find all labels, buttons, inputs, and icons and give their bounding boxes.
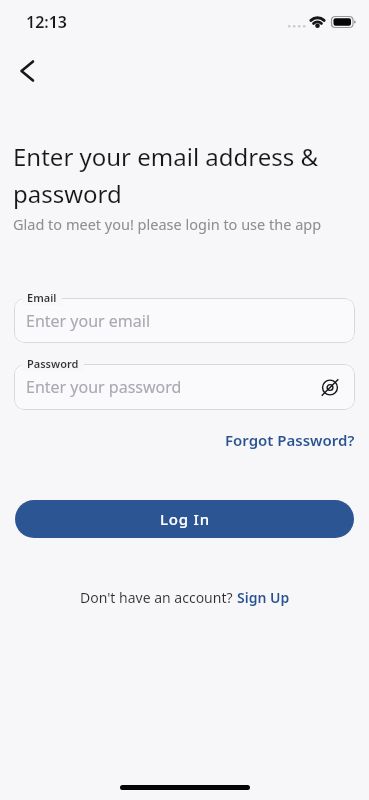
- staticText: Forgot Password?: [225, 430, 355, 450]
- staticText: Enter your password: [26, 376, 182, 398]
- staticText: Email: [27, 290, 57, 305]
- staticText: Enter your email: [26, 310, 151, 332]
- button[interactable]: Enter your email: [14, 298, 355, 343]
- staticText: Log In: [160, 509, 210, 529]
- staticText: Don't have an account?: [80, 588, 237, 607]
- staticText: Glad to meet you! please login to use th…: [13, 214, 322, 234]
- staticText: Enter your email address & password: [13, 140, 319, 210]
- button[interactable]: Forgot Password?: [225, 430, 355, 450]
- button[interactable]: Log In: [15, 500, 354, 538]
- staticText: 12:13: [26, 11, 68, 33]
- button[interactable]: [8, 52, 48, 92]
- button[interactable]: Enter your password: [14, 364, 355, 410]
- staticText: Password: [27, 356, 79, 371]
- staticText: Sign Up: [237, 588, 290, 607]
- button[interactable]: Sign Up: [237, 588, 290, 607]
